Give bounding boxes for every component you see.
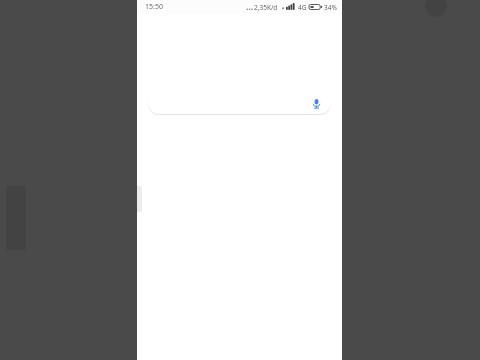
staticText: 34%	[324, 3, 337, 12]
button[interactable]: Voice search	[148, 92, 331, 114]
staticText: 15:50	[145, 2, 163, 12]
staticText: 4G	[298, 3, 307, 12]
button[interactable]: Voice search	[307, 94, 325, 112]
staticText: 2,35K/d	[254, 3, 278, 12]
